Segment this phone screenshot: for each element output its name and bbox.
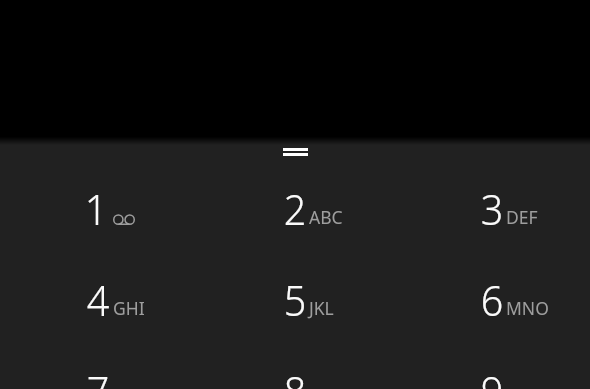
staticText: ABC <box>309 205 343 229</box>
staticText: 4 <box>87 271 109 328</box>
staticText: 3 <box>481 180 503 237</box>
staticText: 1 <box>85 180 107 237</box>
button[interactable]: Dial 9 <box>393 362 590 389</box>
button[interactable]: Dial 1 <box>0 180 196 271</box>
staticText: MNO <box>506 296 549 320</box>
button[interactable]: Dial 2 <box>196 180 393 271</box>
staticText: 9 <box>481 362 503 389</box>
staticText: GHI <box>113 296 145 320</box>
button[interactable]: Dial 4 <box>0 271 196 362</box>
staticText: JKL <box>309 296 334 320</box>
staticText: 2 <box>284 180 306 237</box>
button[interactable]: Hide dial pad <box>0 148 590 156</box>
button[interactable]: Dial 6 <box>393 271 590 362</box>
staticText: 8 <box>284 362 306 389</box>
button[interactable]: Dial 8 <box>196 362 393 389</box>
button[interactable]: Dial 7 <box>0 362 196 389</box>
staticText: 6 <box>481 271 503 328</box>
button[interactable]: Dial 3 <box>393 180 590 271</box>
staticText: 5 <box>284 271 306 328</box>
staticText: DEF <box>506 205 538 229</box>
button[interactable]: Dial 5 <box>196 271 393 362</box>
staticText: 7 <box>87 362 109 389</box>
